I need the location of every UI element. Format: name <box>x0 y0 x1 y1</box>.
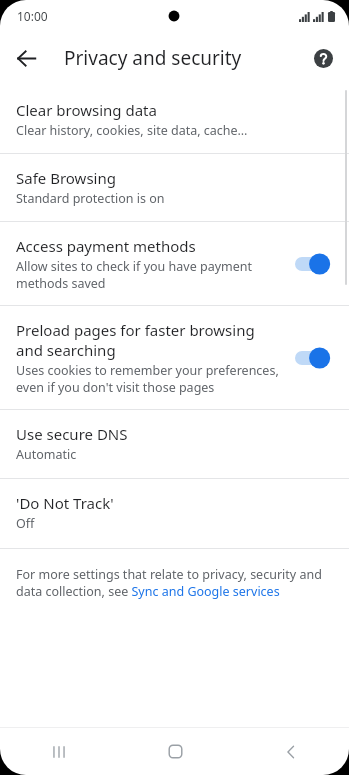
staticText: Use secure DNS <box>16 424 128 444</box>
staticText: Standard protection is on <box>16 190 165 207</box>
button[interactable]: Recent apps <box>0 728 117 775</box>
button[interactable]: Help <box>305 40 341 76</box>
staticText: Privacy and security <box>64 45 242 71</box>
button[interactable]: Safe Browsing <box>0 154 349 221</box>
button[interactable]: Toggle setting <box>295 252 335 276</box>
staticText: Preload pages for faster browsing and se… <box>16 320 285 360</box>
staticText: Off <box>16 515 35 532</box>
button[interactable]: Preload pages for faster browsing and se… <box>0 306 349 409</box>
staticText: Uses cookies to remember your preference… <box>16 362 285 396</box>
staticText: 'Do Not Track' <box>16 493 114 513</box>
button[interactable]: 'Do Not Track' <box>0 479 349 548</box>
staticText: Safe Browsing <box>16 168 116 188</box>
staticText: Access payment methods <box>16 236 196 256</box>
button[interactable]: Clear browsing data <box>0 88 349 153</box>
button[interactable]: Use secure DNS <box>0 410 349 478</box>
button[interactable]: Back <box>233 728 349 775</box>
staticText: Clear browsing data <box>16 100 157 120</box>
staticText: Automatic <box>16 446 77 463</box>
button[interactable]: Home <box>117 728 233 775</box>
button[interactable]: Navigate up <box>6 38 46 78</box>
staticText: For more settings that relate to privacy… <box>16 566 331 600</box>
staticText: Allow sites to check if you have payment… <box>16 258 285 292</box>
button[interactable]: For more settings that relate to privacy… <box>0 549 349 614</box>
button[interactable]: Toggle setting <box>295 346 335 370</box>
staticText: 10:00 <box>17 8 48 24</box>
button[interactable]: Access payment methods <box>0 222 349 305</box>
staticText: Clear history, cookies, site data, cache… <box>16 122 248 139</box>
